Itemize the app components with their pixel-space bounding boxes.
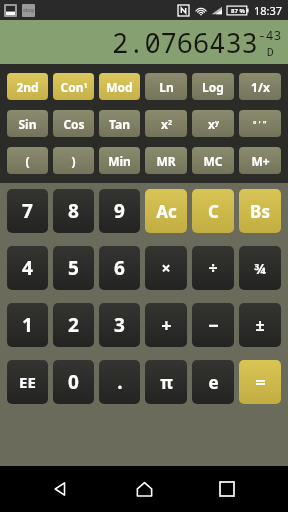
button[interactable]: π: [145, 360, 187, 404]
staticText: ebay: [23, 7, 35, 14]
button[interactable]: 1/x: [239, 73, 281, 100]
staticText: Sin: [18, 116, 37, 132]
button[interactable]: ×: [145, 246, 187, 290]
button[interactable]: Mod: [99, 73, 140, 100]
staticText: x2: [161, 116, 172, 132]
button[interactable]: ±: [239, 303, 281, 347]
button[interactable]: .: [99, 360, 140, 404]
button[interactable]: 5: [53, 246, 94, 290]
button[interactable]: Ln: [145, 73, 187, 100]
staticText: 2.0766433: [112, 24, 258, 61]
staticText: C: [208, 200, 219, 223]
button[interactable]: Cos: [53, 110, 94, 137]
staticText: =: [255, 370, 266, 395]
staticText: Cos: [63, 116, 85, 132]
button[interactable]: ° ' ": [239, 110, 281, 137]
staticText: +: [161, 313, 172, 338]
staticText: D: [267, 44, 274, 59]
staticText: M+: [251, 153, 270, 169]
button[interactable]: =: [239, 360, 281, 404]
button[interactable]: M+: [239, 147, 281, 174]
button[interactable]: ÷: [192, 246, 234, 290]
staticText: -43: [258, 26, 282, 44]
staticText: 4: [22, 255, 33, 281]
staticText: 9: [114, 198, 125, 224]
staticText: 87 %: [231, 7, 245, 15]
button[interactable]: (: [7, 147, 48, 174]
button[interactable]: ): [53, 147, 94, 174]
staticText: (: [25, 153, 30, 169]
button[interactable]: +: [145, 303, 187, 347]
staticText: ): [71, 153, 76, 169]
staticText: 5: [68, 255, 79, 281]
button[interactable]: Min: [99, 147, 140, 174]
staticText: 8: [68, 198, 79, 224]
staticText: 2: [68, 312, 79, 338]
button[interactable]: MR: [145, 147, 187, 174]
button[interactable]: Back: [39, 467, 83, 511]
staticText: ¾: [254, 259, 266, 278]
button[interactable]: EE: [7, 360, 48, 404]
button[interactable]: Con1: [53, 73, 94, 100]
button[interactable]: −: [192, 303, 234, 347]
staticText: ° ' ": [253, 118, 267, 129]
staticText: ±: [255, 314, 265, 336]
button[interactable]: Log: [192, 73, 234, 100]
button[interactable]: 2: [53, 303, 94, 347]
button[interactable]: MC: [192, 147, 234, 174]
button[interactable]: Home: [122, 467, 166, 511]
button[interactable]: 1: [7, 303, 48, 347]
button[interactable]: 7: [7, 189, 48, 233]
button[interactable]: Recent apps: [205, 467, 249, 511]
staticText: 2nd: [16, 79, 39, 95]
button[interactable]: 2nd: [7, 73, 48, 100]
staticText: e: [208, 371, 219, 394]
button[interactable]: 3: [99, 303, 140, 347]
button[interactable]: Bs: [239, 189, 281, 233]
button[interactable]: 8: [53, 189, 94, 233]
button[interactable]: Tan: [99, 110, 140, 137]
staticText: ×: [161, 257, 171, 279]
staticText: 6: [114, 255, 125, 281]
staticText: Con1: [60, 79, 88, 95]
staticText: ÷: [208, 257, 218, 279]
button[interactable]: 4: [7, 246, 48, 290]
staticText: Log: [202, 79, 224, 95]
staticText: 1: [22, 312, 33, 338]
staticText: −: [208, 313, 219, 338]
button[interactable]: C: [192, 189, 234, 233]
staticText: π: [160, 371, 173, 394]
staticText: Ac: [156, 200, 177, 223]
staticText: 18:37: [254, 3, 283, 18]
staticText: MR: [156, 153, 176, 169]
staticText: 0: [68, 369, 79, 395]
staticText: Mod: [106, 79, 133, 95]
staticText: MC: [203, 153, 223, 169]
button[interactable]: ¾: [239, 246, 281, 290]
staticText: xy: [208, 116, 219, 132]
button[interactable]: Sin: [7, 110, 48, 137]
staticText: Min: [108, 153, 131, 169]
staticText: Tan: [109, 116, 130, 132]
staticText: EE: [19, 372, 36, 392]
button[interactable]: Ac: [145, 189, 187, 233]
staticText: Ln: [159, 79, 174, 95]
button[interactable]: 0: [53, 360, 94, 404]
button[interactable]: 9: [99, 189, 140, 233]
staticText: .: [117, 369, 123, 395]
button[interactable]: xy: [192, 110, 234, 137]
staticText: 7: [22, 198, 33, 224]
staticText: Bs: [250, 200, 270, 223]
button[interactable]: e: [192, 360, 234, 404]
staticText: 3: [114, 312, 125, 338]
button[interactable]: 6: [99, 246, 140, 290]
staticText: 1/x: [251, 79, 270, 95]
button[interactable]: x2: [145, 110, 187, 137]
